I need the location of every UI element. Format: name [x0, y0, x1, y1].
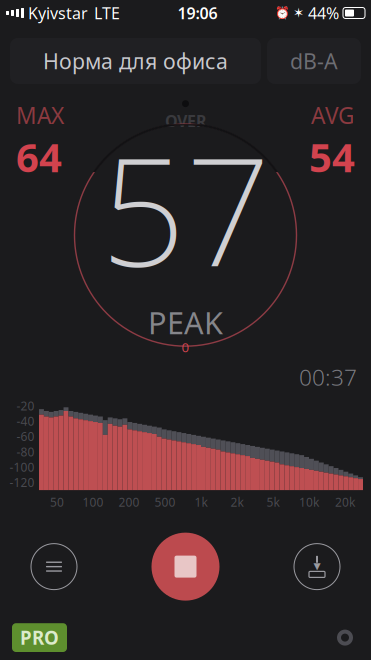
staticText: 200	[118, 494, 139, 510]
staticText: ✶	[293, 5, 304, 20]
staticText: OVER	[165, 110, 206, 131]
staticText: PEAK	[148, 302, 223, 343]
staticText: dB-A	[290, 47, 338, 75]
staticText: 20k	[335, 494, 355, 510]
button[interactable]: Menu	[28, 541, 80, 593]
staticText: 44%	[308, 2, 339, 24]
staticText: -80	[16, 444, 34, 460]
staticText: 57	[100, 110, 270, 308]
staticText: MAX	[16, 100, 64, 130]
staticText: ⏰	[275, 6, 290, 20]
staticText: PRO	[20, 625, 59, 650]
button[interactable]: dB-A	[267, 38, 361, 84]
button[interactable]: PRO	[12, 623, 67, 652]
staticText: 1k	[194, 494, 207, 510]
staticText: LTE	[94, 2, 120, 24]
staticText: -100	[9, 459, 34, 475]
staticText: 500	[154, 494, 175, 510]
staticText: -40	[16, 413, 34, 429]
button[interactable]: Stop recording	[149, 531, 221, 603]
staticText: 19:06	[177, 2, 217, 24]
staticText: -20	[16, 398, 34, 414]
staticText: 2k	[230, 494, 243, 510]
staticText: AVG	[311, 100, 355, 130]
staticText: 0	[181, 338, 189, 356]
staticText: -60	[16, 428, 34, 444]
button[interactable]: Settings	[331, 624, 359, 652]
staticText: 00:37	[299, 362, 357, 392]
button[interactable]: Норма для офиса	[10, 38, 261, 84]
staticText: 5k	[266, 494, 279, 510]
staticText: 100	[82, 494, 103, 510]
button[interactable]: Save	[291, 541, 343, 593]
staticText: -120	[9, 474, 34, 490]
staticText: 64	[16, 130, 62, 183]
staticText: Kyivstar	[28, 2, 88, 24]
staticText: 50	[50, 494, 64, 510]
staticText: Норма для офиса	[43, 47, 228, 75]
staticText: 10k	[299, 494, 319, 510]
staticText: 54	[309, 130, 355, 183]
staticText: ▼	[313, 561, 320, 571]
